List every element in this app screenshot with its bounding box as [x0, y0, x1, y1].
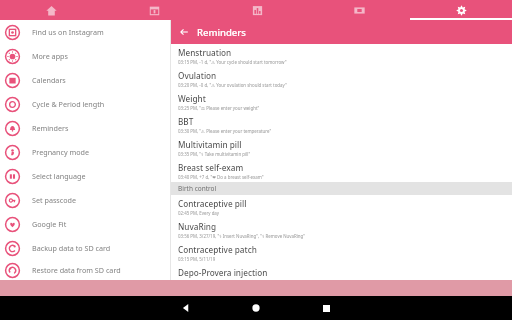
staticText: NuvaRing: [178, 221, 217, 232]
button[interactable]: Back: [171, 20, 197, 44]
staticText: Set passcode: [32, 195, 77, 205]
button[interactable]: Find us on Instagram: [0, 20, 170, 44]
staticText: Weight: [178, 93, 206, 104]
staticText: 03:15 PM, 5/11/19: [178, 256, 216, 262]
button[interactable]: Back: [151, 296, 221, 320]
staticText: Backup data to SD card: [32, 243, 111, 253]
button[interactable]: NuvaRing: [171, 218, 512, 241]
button[interactable]: Select language: [0, 164, 170, 188]
staticText: 03:30 PM, "⚠ Please enter your temperatu…: [178, 128, 272, 134]
staticText: More apps: [32, 51, 68, 61]
staticText: Find us on Instagram: [32, 27, 104, 37]
staticText: 03:35 PM, "⚕ Take multivitamin pill": [178, 151, 251, 157]
staticText: Menstruation: [178, 47, 232, 58]
button[interactable]: More apps: [0, 44, 170, 68]
staticText: Select language: [32, 171, 86, 181]
button[interactable]: Weight: [171, 90, 512, 113]
staticText: 03:40 PM, +7 d, "❤ Do a breast self-exam…: [178, 174, 264, 180]
staticText: 03:56 PM, 3/27/19, "⚕ Insert NuvaRing", …: [178, 233, 306, 239]
staticText: Breast self-exam: [178, 162, 244, 173]
button[interactable]: Notes: [308, 0, 410, 20]
button[interactable]: Calendars: [0, 68, 170, 92]
button[interactable]: Pregnancy mode: [0, 140, 170, 164]
button[interactable]: Settings: [410, 0, 512, 20]
button[interactable]: Contraceptive pill: [171, 195, 512, 218]
staticText: Ovulation: [178, 70, 217, 81]
button[interactable]: Calendar: [103, 0, 206, 20]
button[interactable]: Home: [0, 0, 103, 20]
button[interactable]: Home: [221, 296, 291, 320]
button[interactable]: Restore data from SD card: [0, 260, 170, 280]
button[interactable]: BBT: [171, 113, 512, 136]
button[interactable]: Recents: [291, 296, 361, 320]
staticText: Restore data from SD card: [32, 265, 121, 275]
button[interactable]: Reminders: [0, 116, 170, 140]
staticText: Multivitamin pill: [178, 139, 242, 150]
staticText: BBT: [178, 116, 194, 127]
staticText: Reminders: [32, 123, 69, 133]
staticText: 03:15 PM, -1 d, "⚠ Your cycle should sta…: [178, 59, 287, 65]
button[interactable]: Contraceptive patch: [171, 241, 512, 264]
staticText: Contraceptive patch: [178, 244, 257, 255]
button[interactable]: Breast self-exam: [171, 159, 512, 182]
staticText: Google Fit: [32, 219, 67, 229]
staticText: Pregnancy mode: [32, 147, 90, 157]
staticText: Reminders: [197, 26, 246, 39]
staticText: 03:25 PM, "⚖ Please enter your weight": [178, 105, 260, 111]
button[interactable]: Charts: [206, 0, 308, 20]
button[interactable]: Depo-Provera injection: [171, 264, 512, 280]
button[interactable]: Ovulation: [171, 67, 512, 90]
staticText: Cycle & Period length: [32, 99, 105, 109]
staticText: Contraceptive pill: [178, 198, 247, 209]
staticText: Depo-Provera injection: [178, 267, 268, 278]
staticText: 03:20 PM, -0 d, "⚠ Your ovulation should…: [178, 82, 287, 88]
button[interactable]: Cycle & Period length: [0, 92, 170, 116]
button[interactable]: Menstruation: [171, 44, 512, 67]
button[interactable]: Multivitamin pill: [171, 136, 512, 159]
staticText: Calendars: [32, 75, 66, 85]
button[interactable]: Backup data to SD card: [0, 236, 170, 260]
staticText: 02:45 PM, Every day: [178, 210, 220, 216]
button[interactable]: Set passcode: [0, 188, 170, 212]
staticText: Birth control: [178, 184, 217, 193]
button[interactable]: Google Fit: [0, 212, 170, 236]
